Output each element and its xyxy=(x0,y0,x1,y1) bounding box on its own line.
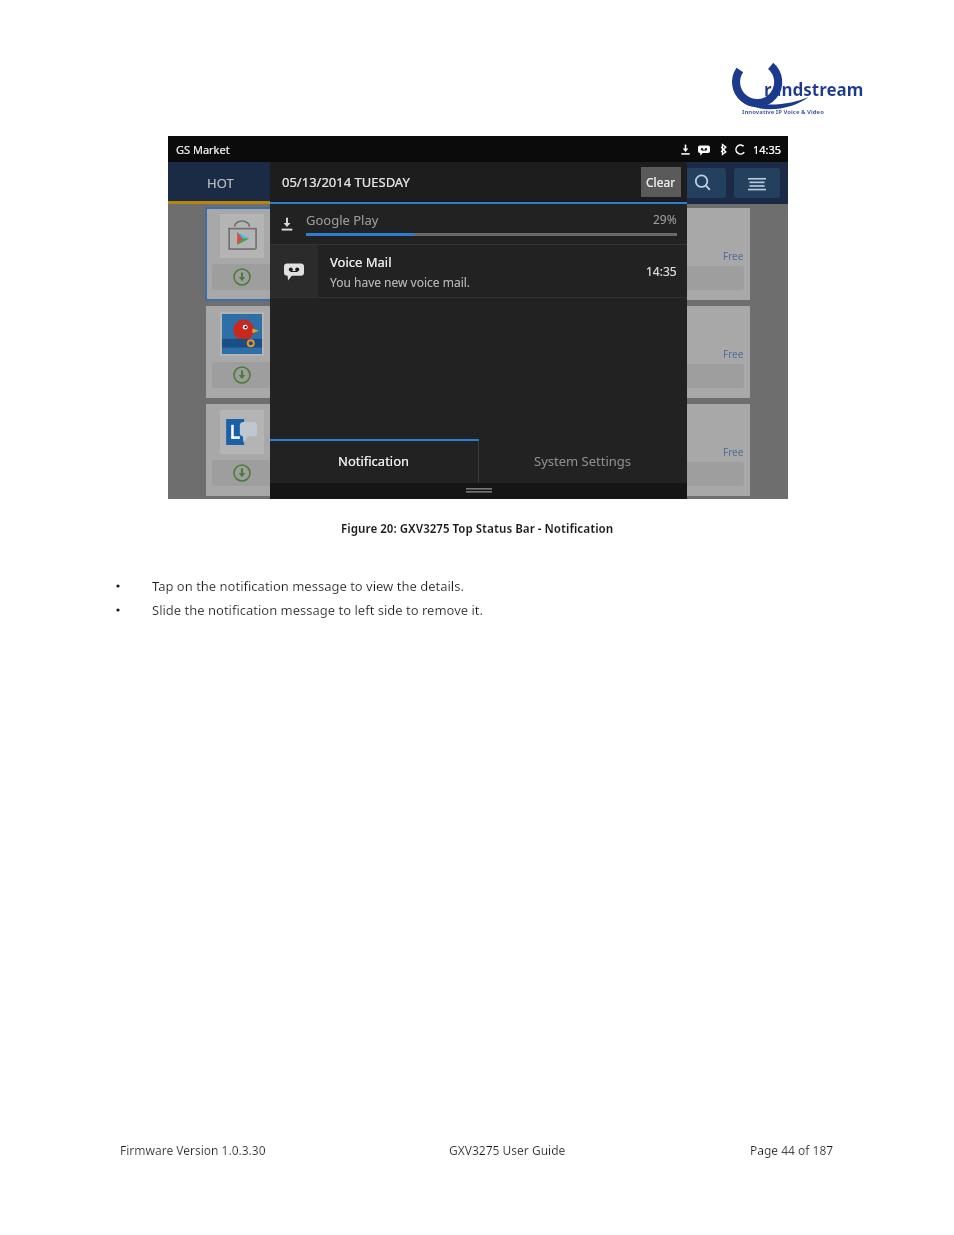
button[interactable]: Download xyxy=(206,404,472,496)
button[interactable]: Search xyxy=(680,168,726,198)
staticText: System Settings xyxy=(534,452,632,470)
staticText: Voice Mail xyxy=(330,253,392,271)
staticText: APP xyxy=(305,174,330,192)
staticText: Figure 20: GXV3275 Top Status Bar - Noti… xyxy=(341,521,614,537)
button[interactable]: Download xyxy=(484,306,750,398)
staticText: Page 44 of 187 xyxy=(750,1142,834,1158)
button[interactable]: Menu xyxy=(734,168,780,198)
staticText: Free xyxy=(723,445,744,459)
staticText: You have new voice mail. xyxy=(330,274,471,290)
button[interactable]: Install xyxy=(556,462,744,486)
button[interactable]: Install xyxy=(278,462,466,486)
staticText: Innovative IP Voice & Video xyxy=(742,108,824,116)
button[interactable]: Download xyxy=(490,460,550,486)
staticText: 29% xyxy=(653,211,677,227)
staticText: Notification xyxy=(338,452,410,470)
staticText: Free xyxy=(723,249,744,263)
staticText: Google Play xyxy=(306,211,379,229)
button[interactable]: Download xyxy=(206,208,472,300)
button[interactable]: Download xyxy=(212,362,272,388)
button[interactable]: Download xyxy=(206,306,472,398)
button[interactable]: Install xyxy=(556,364,744,388)
staticText: Google P… xyxy=(278,216,332,231)
staticText: Slide the notification message to left s… xyxy=(152,601,484,619)
staticText: Free xyxy=(723,347,744,361)
staticText: randstream xyxy=(764,78,864,101)
staticText: GXV3275 User Guide xyxy=(449,1142,566,1158)
staticText: Clear xyxy=(646,174,676,190)
staticText: 05/13/2014 TUESDAY xyxy=(282,173,410,191)
staticText: 14:35 xyxy=(646,263,677,279)
staticText: Tap on the notification message to view … xyxy=(152,577,464,595)
button[interactable]: APP xyxy=(272,162,362,204)
button[interactable]: Install xyxy=(556,266,744,290)
button[interactable]: Download xyxy=(212,460,272,486)
button[interactable]: System Settings xyxy=(479,439,687,483)
button[interactable]: Install xyxy=(278,266,466,290)
staticText: 14:35 xyxy=(753,142,782,157)
button[interactable]: Download xyxy=(484,404,750,496)
button[interactable]: Download xyxy=(212,264,272,290)
button[interactable]: Download xyxy=(484,208,750,300)
button[interactable]: Notification xyxy=(270,439,478,483)
staticText: Install xyxy=(358,271,387,285)
staticText: GS Market xyxy=(176,142,230,157)
staticText: Install xyxy=(636,271,665,285)
staticText: Firmware Version 1.0.3.30 xyxy=(120,1142,266,1158)
button[interactable]: Clear xyxy=(641,167,681,197)
button[interactable]: Voice Mail xyxy=(270,245,687,297)
button[interactable]: HOT xyxy=(168,162,272,204)
button[interactable]: Google Play xyxy=(270,204,687,244)
staticText: HOT xyxy=(207,174,234,192)
